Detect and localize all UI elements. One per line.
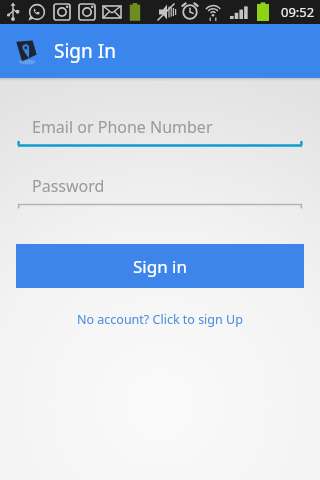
staticText: No account? Click to sign Up: [77, 311, 243, 328]
other: App logo: [16, 37, 46, 65]
staticText: Password: [32, 175, 105, 197]
button[interactable]: Email or Phone Number: [16, 106, 304, 148]
button[interactable]: Password: [16, 165, 304, 207]
staticText: 09:52: [281, 3, 315, 21]
staticText: Sign In: [54, 38, 116, 64]
button[interactable]: Sign in: [16, 244, 304, 288]
staticText: Sign in: [133, 255, 187, 278]
button[interactable]: No account? Click to sign Up: [65, 306, 255, 333]
staticText: Email or Phone Number: [32, 116, 213, 138]
